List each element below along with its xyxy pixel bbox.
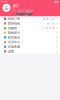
staticText: 会员中心	[17, 11, 23, 17]
staticText: 收货地址	[8, 35, 20, 39]
staticText: 9:41	[1, 0, 7, 3]
button[interactable]: 收货地址	[0, 35, 60, 40]
staticText: 设置	[8, 49, 14, 53]
button[interactable]: 我的积分	[0, 30, 60, 35]
button[interactable]: 我的钱包	[0, 21, 60, 26]
staticText: ID：88293312	[13, 9, 34, 12]
button[interactable]: 会员中心	[0, 40, 60, 44]
staticText: 查看全部	[43, 17, 55, 20]
button[interactable]: 在线客服	[0, 44, 60, 49]
staticText: 我的订单	[8, 17, 20, 21]
button[interactable]: 设置	[0, 49, 60, 54]
staticText: 优惠券	[8, 26, 17, 30]
button[interactable]: 我的订单	[0, 16, 60, 21]
staticText: 我的积分	[8, 31, 20, 35]
staticText: 我的钱包	[8, 21, 20, 25]
button[interactable]: 优惠券	[0, 26, 60, 30]
staticText: 在线客服	[8, 45, 20, 49]
staticText: 3 张可用	[43, 26, 55, 30]
staticText: 张三	[13, 4, 19, 8]
button[interactable]: 我的权益	[25, 12, 32, 15]
staticText: 会员中心	[8, 40, 20, 44]
staticText: ▮▮ ▮	[54, 0, 58, 3]
staticText: ¥0.00	[47, 22, 55, 25]
button[interactable]: 会员中心	[16, 12, 24, 15]
staticText: 我的权益	[25, 11, 31, 17]
